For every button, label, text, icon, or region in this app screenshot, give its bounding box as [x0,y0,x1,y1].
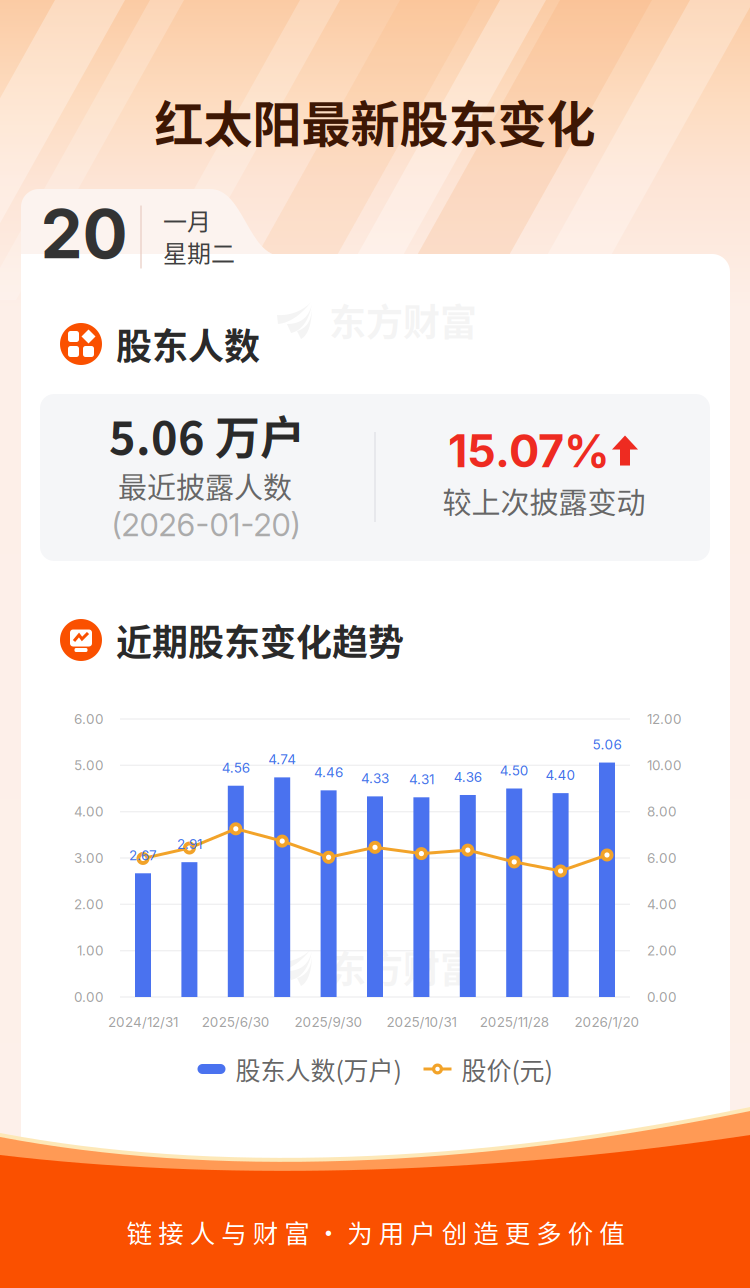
staticText: 星期二 [163,235,235,269]
staticText: (2026-01-20) [111,506,300,544]
staticText: 较上次披露变动 [442,480,645,522]
staticText: 4.36 [454,769,482,785]
staticText: 2025/9/30 [295,1014,363,1030]
staticText: 2024/12/31 [108,1014,178,1030]
staticText: 2.67 [129,847,157,863]
staticText: 2.91 [177,836,202,852]
staticText: 4.74 [268,751,296,767]
staticText: 股价(元) [461,1051,552,1087]
staticText: 4.31 [409,771,434,787]
staticText: 2026/1/20 [574,1014,639,1030]
staticText: 15.07% [448,424,610,478]
staticText: 东方财富 [329,293,477,347]
staticText: 4.56 [222,760,250,776]
staticText: 4.33 [361,770,389,786]
staticText: 最近披露人数 [118,465,292,507]
staticText: 2.00 [74,896,104,912]
staticText: 0.00 [647,989,677,1005]
staticText: 6.00 [647,850,677,866]
staticText: 股东人数 [116,318,260,370]
staticText: 8.00 [647,803,677,820]
staticText: 10.00 [647,757,682,773]
staticText: 4.50 [500,762,529,779]
staticText: 6.00 [74,711,104,727]
staticText: 近期股东变化趋势 [116,614,404,666]
staticText: 2025/6/30 [202,1014,270,1030]
staticText: 3.00 [74,850,104,866]
staticText: 5.06 [592,736,621,753]
staticText: 股东人数(万户) [235,1051,401,1087]
staticText: 5.06 万户 [109,402,305,468]
staticText: 4.00 [647,896,677,912]
staticText: 5.00 [74,757,104,773]
staticText: 4.00 [74,803,104,820]
staticText: 4.46 [314,764,343,780]
staticText: 20 [40,193,127,275]
staticText: 1.00 [77,942,104,959]
staticText: 0.00 [74,989,104,1005]
staticText: 2025/10/31 [386,1014,456,1030]
staticText: 4.40 [546,767,576,783]
staticText: 12.00 [647,711,682,727]
staticText: 红太阳最新股东变化 [154,85,595,156]
staticText: 2.00 [647,942,677,959]
staticText: 东方财富 [329,940,477,994]
staticText: 2025/11/28 [480,1014,549,1030]
staticText: 链接人与财富·为用户创造更多价值 [127,1213,625,1250]
staticText: 一月 [163,203,211,237]
